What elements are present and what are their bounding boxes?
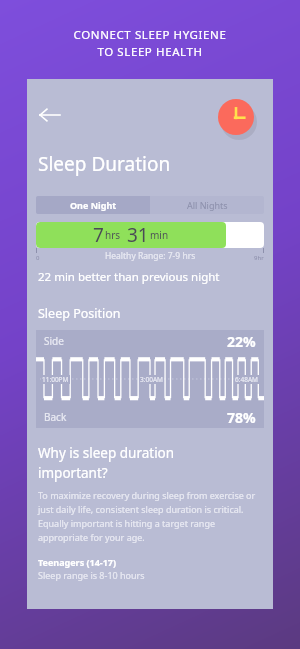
staticText: hrs [105,228,121,242]
staticText: 9hr [254,254,264,262]
staticText: Sleep range is 8-10 hours [38,569,145,581]
staticText: 3:00AM [140,375,163,384]
button[interactable]: All Nights [150,196,264,214]
staticText: Side [44,334,64,348]
staticText: All Nights [187,199,228,211]
button[interactable]: Side [36,330,264,428]
staticText: 11:00PM [42,375,69,384]
staticText: Sleep Position [38,305,121,322]
button[interactable]: Back [33,98,67,132]
staticText: Why is sleep duration important? [38,444,175,482]
button[interactable]: One Night [36,196,150,214]
staticText: 31 [127,222,149,248]
staticText: min [150,228,169,242]
staticText: 78% [227,408,256,427]
staticText: Back [44,410,67,424]
staticText: 0 [36,254,40,262]
button[interactable]: Sleep timer [218,99,254,135]
staticText: One Night [70,199,117,211]
staticText: Healthy Range: 7-9 hrs [105,250,196,262]
staticText: Sleep Duration [38,151,171,177]
staticText: 22 min better than previous night [38,269,220,285]
staticText: 6:48AM [235,375,258,384]
staticText: 7 [93,222,104,248]
staticText: 22% [227,332,256,351]
staticText: CONNECT SLEEP HYGIENE TO SLEEP HEALTH [0,27,300,60]
staticText: To maximize recovery during sleep from e… [38,489,260,543]
staticText: Teenagers (14-17) [38,556,117,568]
